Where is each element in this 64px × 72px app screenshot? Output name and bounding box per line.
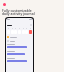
button[interactable]: Day 3: [14, 28, 17, 34]
button[interactable]: Day 7: [29, 28, 32, 34]
staticText: Fully customizable daily activity journa…: [2, 8, 38, 16]
button[interactable]: Day 6: [25, 28, 28, 34]
button[interactable]: Day 4: [18, 28, 21, 34]
button[interactable]: [7, 40, 32, 42]
button[interactable]: App logo: [3, 3, 6, 6]
button[interactable]: [7, 60, 27, 62]
button[interactable]: Day 2: [11, 28, 14, 34]
button[interactable]: [7, 36, 32, 38]
button[interactable]: [7, 53, 25, 55]
button[interactable]: Day 1: [7, 28, 10, 34]
button[interactable]: Day 5: [22, 28, 25, 34]
button[interactable]: [7, 46, 27, 48]
